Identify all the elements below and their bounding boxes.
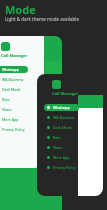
staticText: Light & dark theme mode available (5, 16, 79, 22)
staticText: WA Business (53, 115, 75, 120)
staticText: More App (53, 155, 70, 160)
staticText: Privacy Policy (53, 165, 76, 170)
staticText: Whatsapp (53, 105, 71, 110)
staticText: Privacy Policy (2, 127, 25, 132)
staticText: Rate (2, 97, 10, 102)
staticText: Call Manager (1, 53, 28, 58)
staticText: Rate (53, 135, 61, 140)
staticText: Share (53, 145, 63, 150)
staticText: Call Manager (52, 91, 79, 96)
staticText: Share (2, 107, 12, 112)
staticText: More App (2, 117, 19, 122)
staticText: Dark Mode (53, 125, 72, 130)
staticText: Dark Mode (2, 87, 21, 92)
staticText: WA Business (2, 77, 24, 82)
staticText: Mode (5, 2, 36, 17)
staticText: Whatsapp (2, 67, 20, 72)
